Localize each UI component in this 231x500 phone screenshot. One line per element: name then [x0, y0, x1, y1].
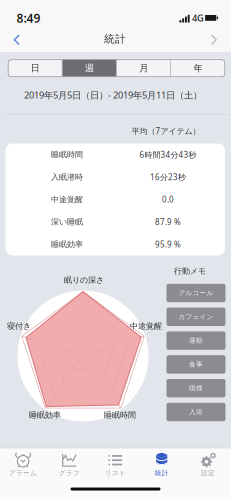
staticText: グラフ: [59, 469, 80, 477]
staticText: 4G: [192, 12, 204, 24]
staticText: 睡眠効率: [51, 239, 83, 249]
staticText: 0.0: [162, 194, 174, 205]
button[interactable]: アルコール: [166, 284, 225, 302]
button[interactable]: 週: [62, 60, 116, 77]
staticText: 睡眠効率: [29, 410, 61, 420]
staticText: 設定: [201, 469, 215, 477]
button[interactable]: 食事: [166, 355, 225, 374]
staticText: アルコール: [178, 289, 213, 297]
button[interactable]: 統計: [139, 448, 185, 480]
staticText: 寝付き: [7, 321, 31, 331]
staticText: 日: [30, 62, 39, 74]
staticText: 年: [193, 62, 202, 74]
button[interactable]: 喫煙: [166, 379, 225, 397]
button[interactable]: 月: [117, 60, 170, 77]
staticText: リスト: [105, 469, 126, 477]
button[interactable]: 入浴: [166, 403, 225, 421]
staticText: アラーム: [9, 469, 37, 477]
button[interactable]: 年: [171, 60, 225, 77]
button[interactable]: Back: [2, 26, 32, 54]
staticText: 月: [139, 62, 148, 74]
staticText: 95.9 %: [155, 239, 181, 250]
staticText: 6時間34分43秒: [139, 149, 196, 160]
staticText: 睡眠時間: [104, 410, 136, 420]
staticText: 中途覚醒: [130, 321, 162, 331]
staticText: 平均（7アイテム）: [131, 126, 200, 136]
staticText: 8:49: [17, 10, 41, 26]
staticText: 運動: [189, 336, 203, 345]
staticText: 週: [85, 62, 94, 74]
staticText: 16分23秒: [150, 172, 186, 182]
button[interactable]: 日: [8, 60, 62, 77]
staticText: 統計: [104, 32, 126, 45]
button[interactable]: 運動: [166, 331, 225, 350]
staticText: カフェイン: [178, 313, 213, 321]
staticText: 深い睡眠: [51, 217, 83, 227]
staticText: 喫煙: [189, 384, 203, 392]
staticText: 2019年5月5日（日）- 2019年5月11日（土）: [24, 89, 202, 101]
staticText: 入眠潜時: [51, 172, 83, 182]
staticText: 行動メモ: [174, 266, 206, 276]
staticText: 食事: [189, 360, 203, 368]
staticText: 中途覚醒: [51, 195, 83, 204]
button[interactable]: アラーム: [0, 448, 46, 480]
staticText: 87.9 %: [155, 217, 181, 227]
staticText: 眠りの深さ: [64, 275, 104, 285]
button[interactable]: グラフ: [46, 448, 92, 480]
staticText: 睡眠時間: [51, 150, 83, 160]
button[interactable]: Forward: [199, 26, 229, 54]
button[interactable]: 設定: [185, 448, 231, 480]
button[interactable]: リスト: [92, 448, 139, 480]
button[interactable]: カフェイン: [166, 308, 225, 326]
staticText: 入浴: [189, 408, 203, 416]
staticText: 統計: [155, 469, 169, 477]
